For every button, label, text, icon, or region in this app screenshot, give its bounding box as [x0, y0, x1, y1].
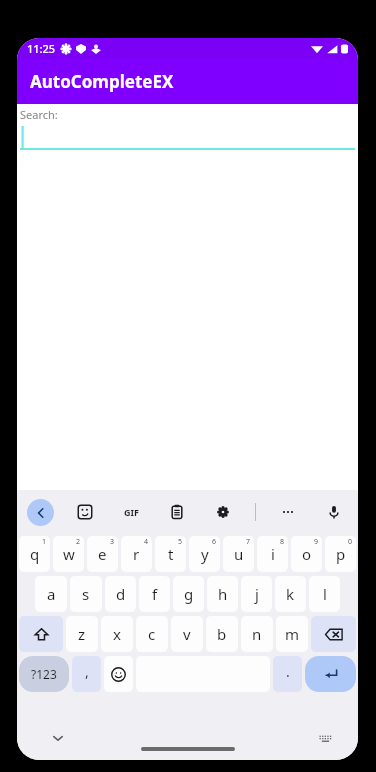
staticText: u	[234, 544, 244, 564]
button[interactable]: Shift	[19, 616, 63, 652]
button[interactable]: o	[291, 536, 322, 572]
button[interactable]: q	[19, 536, 50, 572]
staticText: n	[252, 624, 262, 644]
staticText: c	[148, 624, 156, 644]
button[interactable]: v	[171, 616, 203, 652]
staticText: e	[98, 544, 107, 564]
button[interactable]: g	[173, 576, 204, 612]
button[interactable]: Hide keyboard	[47, 727, 69, 749]
button[interactable]: a	[35, 576, 67, 612]
button[interactable]: d	[105, 576, 136, 612]
button[interactable]: Clipboard	[163, 498, 191, 526]
staticText: h	[218, 584, 228, 604]
button[interactable]: Back	[27, 499, 54, 526]
button[interactable]: u	[223, 536, 254, 572]
staticText: v	[183, 624, 191, 644]
staticText: ?123	[31, 666, 57, 682]
button[interactable]: ?123	[19, 656, 69, 692]
staticText: 11:25	[27, 41, 56, 56]
button[interactable]: j	[241, 576, 272, 612]
staticText: .	[286, 662, 290, 681]
staticText: y	[201, 544, 209, 564]
staticText: f	[152, 584, 158, 604]
staticText: AutoCompleteEX	[30, 70, 174, 93]
staticText: GIF	[124, 506, 139, 518]
staticText: d	[116, 584, 126, 604]
staticText: 0	[348, 537, 353, 547]
button[interactable]: k	[275, 576, 306, 612]
staticText: m	[285, 624, 300, 644]
staticText: g	[184, 584, 194, 604]
button[interactable]: i	[257, 536, 288, 572]
staticText: r	[133, 544, 140, 564]
staticText: 6	[212, 537, 217, 547]
button[interactable]: Settings	[209, 498, 237, 526]
button[interactable]: f	[139, 576, 170, 612]
staticText: w	[63, 544, 75, 564]
staticText: 7	[246, 537, 251, 547]
staticText: 4	[144, 537, 149, 547]
staticText: o	[302, 544, 312, 564]
staticText: 3	[110, 537, 115, 547]
staticText: i	[271, 544, 275, 564]
staticText: 8	[280, 537, 285, 547]
staticText: s	[82, 584, 90, 604]
button[interactable]: s	[70, 576, 102, 612]
button[interactable]: t	[155, 536, 186, 572]
button[interactable]: y	[189, 536, 220, 572]
button[interactable]: Stickers	[71, 498, 99, 526]
staticText: t	[168, 544, 174, 564]
staticText: 1	[42, 537, 47, 547]
staticText: a	[47, 584, 56, 604]
staticText: 5	[178, 537, 183, 547]
staticText: x	[113, 624, 121, 644]
button[interactable]: Enter	[305, 656, 356, 692]
staticText: j	[255, 584, 259, 604]
button[interactable]	[20, 126, 355, 150]
staticText: ,	[85, 662, 89, 681]
button[interactable]: More	[274, 498, 302, 526]
button[interactable]: m	[276, 616, 308, 652]
staticText: b	[217, 624, 227, 644]
button[interactable]: Voice input	[320, 498, 348, 526]
button[interactable]: b	[206, 616, 238, 652]
button[interactable]: e	[87, 536, 118, 572]
button[interactable]: n	[241, 616, 273, 652]
staticText: k	[286, 584, 295, 604]
button[interactable]: h	[207, 576, 238, 612]
button[interactable]: c	[136, 616, 168, 652]
staticText: 2	[76, 537, 81, 547]
button[interactable]: x	[101, 616, 133, 652]
staticText: Search:	[20, 107, 58, 122]
button[interactable]: Backspace	[311, 616, 356, 652]
button[interactable]: ,	[72, 656, 101, 692]
staticText: p	[336, 544, 346, 564]
button[interactable]: w	[53, 536, 84, 572]
staticText: l	[323, 584, 327, 604]
staticText: 9	[314, 537, 319, 547]
button[interactable]: .	[273, 656, 302, 692]
button[interactable]: Switch keyboard	[314, 727, 336, 749]
button[interactable]: r	[121, 536, 152, 572]
button[interactable]: z	[66, 616, 98, 652]
button[interactable]: Emoji	[104, 656, 133, 692]
button[interactable]: l	[309, 576, 340, 612]
staticText: q	[30, 544, 40, 564]
staticText: z	[78, 624, 86, 644]
button[interactable]: GIF	[116, 497, 146, 527]
button[interactable]: p	[325, 536, 356, 572]
